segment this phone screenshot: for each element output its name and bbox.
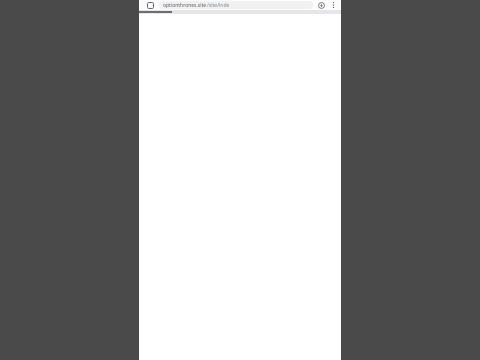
button[interactable]: Download page xyxy=(316,0,327,10)
staticText: optionthrones.site xyxy=(163,2,207,9)
button[interactable]: More options xyxy=(328,0,339,10)
button[interactable]: Switch or open tabs xyxy=(144,0,156,10)
staticText: /site/inde xyxy=(207,2,230,9)
button[interactable]: optionthrones.site xyxy=(159,1,313,9)
